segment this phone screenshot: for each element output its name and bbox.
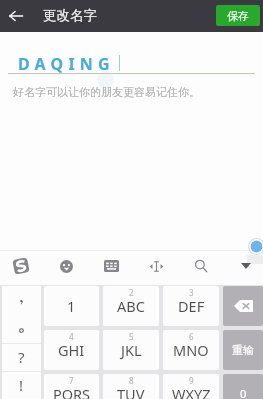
- button[interactable]: Switch keyboard: [101, 256, 121, 276]
- button[interactable]: 2: [103, 286, 159, 326]
- staticText: 6: [189, 331, 194, 342]
- staticText: TUV: [117, 384, 145, 399]
- button[interactable]: 重输: [223, 330, 263, 370]
- staticText: WXYZ: [172, 384, 211, 399]
- staticText: 7: [69, 375, 74, 386]
- staticText: 4: [69, 331, 74, 342]
- staticText: 重输: [232, 343, 254, 357]
- staticText: MNO: [173, 340, 209, 360]
- button[interactable]: Search: [191, 256, 211, 276]
- staticText: 1: [67, 296, 76, 316]
- button[interactable]: Back: [4, 4, 28, 28]
- button[interactable]: ?: [2, 343, 41, 371]
- staticText: 9: [189, 375, 194, 386]
- button[interactable]: 0: [223, 374, 263, 399]
- staticText: 8: [129, 375, 134, 386]
- staticText: 好名字可以让你的朋友更容易记住你。: [13, 85, 200, 99]
- button[interactable]: 3: [163, 286, 219, 326]
- button[interactable]: Emoji: [56, 256, 76, 276]
- staticText: ABC: [117, 296, 145, 316]
- button[interactable]: dot: [2, 318, 41, 343]
- staticText: GHI: [58, 340, 85, 360]
- button[interactable]: 1: [44, 286, 99, 326]
- button[interactable]: Sogou input: [11, 256, 31, 276]
- button[interactable]: Move cursor: [146, 256, 166, 276]
- button[interactable]: !: [2, 371, 41, 399]
- staticText: JKL: [121, 340, 142, 360]
- button[interactable]: comma: [2, 286, 41, 318]
- staticText: 5: [129, 331, 134, 342]
- staticText: 更改名字: [43, 7, 97, 24]
- staticText: DAQING: [18, 53, 115, 75]
- button[interactable]: 4: [44, 330, 99, 370]
- staticText: !: [19, 375, 24, 395]
- button[interactable]: 5: [103, 330, 159, 370]
- staticText: 保存: [227, 9, 249, 23]
- staticText: DEF: [178, 296, 205, 316]
- button[interactable]: Delete: [223, 286, 263, 326]
- staticText: 3: [189, 287, 194, 298]
- staticText: PQRS: [53, 384, 91, 399]
- button[interactable]: 保存: [216, 5, 260, 26]
- button[interactable]: 9: [163, 374, 219, 399]
- staticText: 2: [129, 287, 134, 298]
- button[interactable]: 7: [44, 374, 99, 399]
- button[interactable]: Hide keyboard: [236, 256, 256, 276]
- staticText: ?: [18, 347, 25, 367]
- button[interactable]: 6: [163, 330, 219, 370]
- button[interactable]: 8: [103, 374, 159, 399]
- staticText: 0: [240, 386, 247, 399]
